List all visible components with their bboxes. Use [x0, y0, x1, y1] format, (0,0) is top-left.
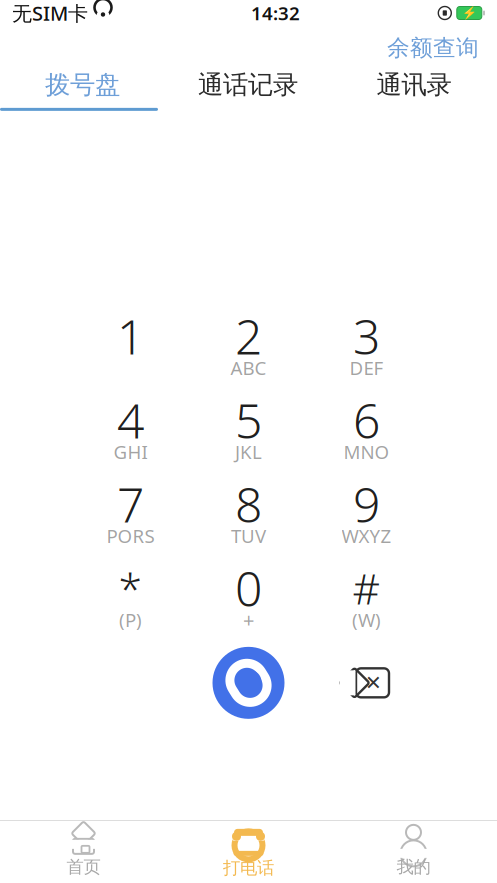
staticText: 7	[117, 472, 144, 536]
staticText: 8	[235, 472, 262, 536]
button[interactable]: 8	[189, 472, 307, 556]
staticText: 通话记录	[198, 69, 298, 100]
staticText: ⚡	[462, 6, 477, 20]
button[interactable]: 5	[189, 388, 307, 472]
staticText: GHI	[113, 439, 147, 464]
button[interactable]: 2	[189, 304, 307, 388]
staticText: WXYZ	[341, 523, 391, 548]
staticText: DEF	[349, 355, 383, 380]
staticText: 0	[235, 556, 262, 620]
button[interactable]: 4	[71, 388, 189, 472]
staticText: MNO	[343, 439, 389, 464]
staticText: 余额查询	[387, 34, 479, 62]
button[interactable]: #	[307, 556, 425, 640]
staticText: +	[243, 607, 254, 633]
button[interactable]: 6	[307, 388, 425, 472]
staticText: 3	[353, 304, 380, 368]
staticText: 6	[353, 388, 380, 452]
button[interactable]: Call	[189, 640, 307, 726]
staticText: 5	[235, 388, 262, 452]
button[interactable]: 余额查询	[375, 30, 491, 66]
staticText: 2	[235, 304, 262, 368]
button[interactable]: 首页	[1, 821, 166, 883]
button[interactable]: 通讯录	[331, 68, 497, 102]
button[interactable]: 我的	[331, 821, 496, 883]
staticText: 4	[117, 388, 144, 452]
staticText: ✕	[365, 671, 382, 694]
staticText: 9	[353, 472, 380, 536]
staticText: JKL	[235, 439, 262, 464]
button[interactable]: 拨号盘	[0, 68, 165, 102]
button[interactable]: 通话记录	[165, 68, 331, 102]
staticText: #	[352, 559, 380, 616]
staticText: (W)	[352, 607, 381, 632]
button[interactable]: 打电话	[166, 821, 331, 883]
button[interactable]: 0	[189, 556, 307, 640]
staticText: 首页	[66, 856, 100, 878]
staticText: (P)	[119, 607, 142, 632]
staticText: TUV	[231, 523, 266, 548]
staticText: 无SIM卡	[12, 0, 88, 26]
staticText: *	[118, 559, 142, 616]
staticText: PORS	[106, 523, 154, 548]
button[interactable]: Delete	[307, 640, 425, 726]
staticText: 拨号盘	[45, 69, 120, 100]
staticText: ABC	[230, 355, 266, 380]
button[interactable]: 9	[307, 472, 425, 556]
staticText: 通讯录	[376, 69, 451, 100]
staticText: 1	[117, 304, 144, 368]
staticText: 14:32	[251, 1, 300, 25]
button[interactable]: 1	[71, 304, 189, 388]
button[interactable]: *	[71, 556, 189, 640]
staticText: 打电话	[223, 857, 274, 879]
button[interactable]: 3	[307, 304, 425, 388]
button[interactable]: 7	[71, 472, 189, 556]
staticText: 我的	[396, 856, 430, 878]
